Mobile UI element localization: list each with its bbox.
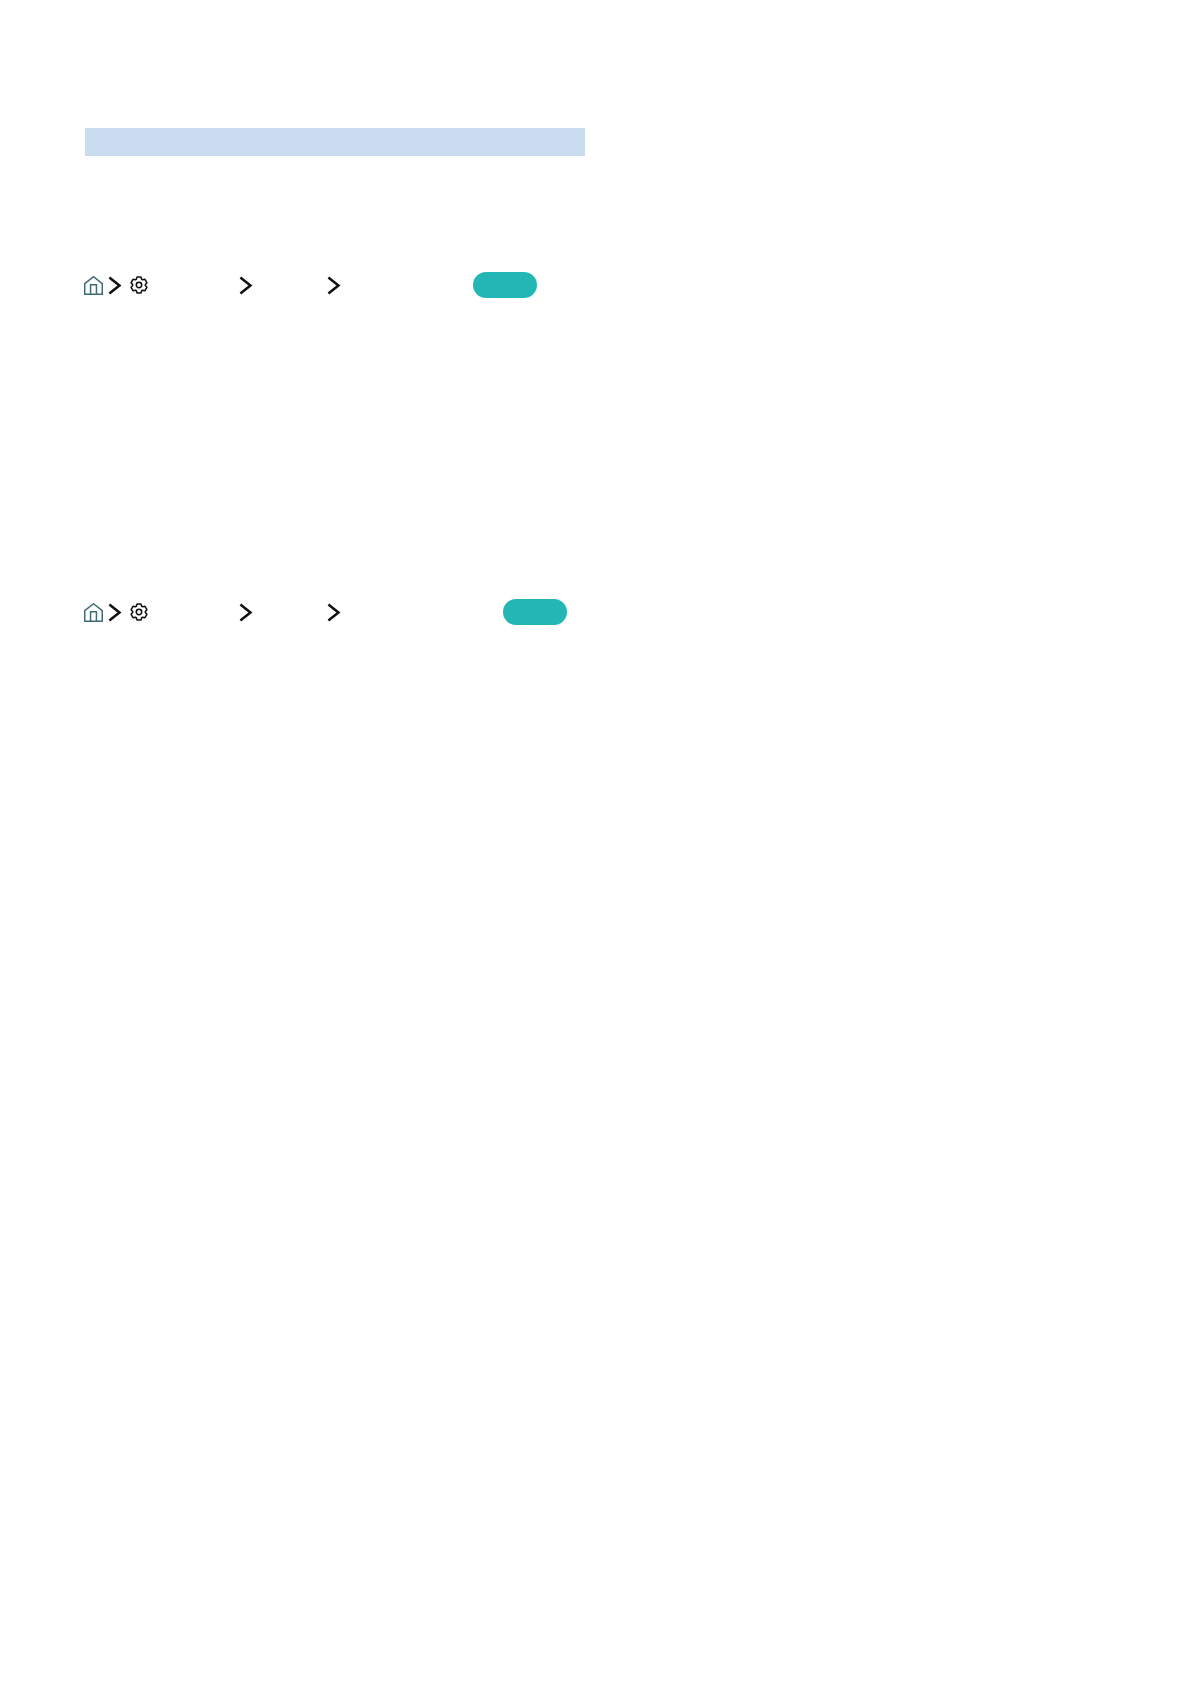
button[interactable]: Next bbox=[239, 275, 252, 295]
button[interactable]: Next bbox=[239, 602, 252, 622]
button[interactable]: Settings bbox=[130, 275, 148, 295]
button[interactable]: Home bbox=[84, 602, 103, 622]
button[interactable]: Next bbox=[108, 602, 121, 622]
button[interactable]: Home bbox=[84, 275, 103, 295]
button[interactable]: Action bbox=[503, 599, 567, 625]
button[interactable]: Next bbox=[327, 275, 340, 295]
button[interactable]: Next bbox=[327, 602, 340, 622]
button[interactable]: Settings bbox=[130, 602, 148, 622]
button[interactable]: Next bbox=[108, 275, 121, 295]
button[interactable]: Action bbox=[473, 272, 537, 298]
